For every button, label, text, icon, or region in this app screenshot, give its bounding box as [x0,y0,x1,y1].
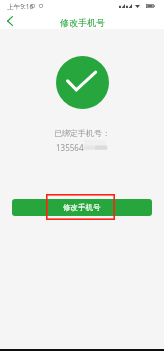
staticText: 修改手机号 [60,17,105,28]
staticText: 上午9:16 [7,2,34,11]
staticText: 修改手机号 [63,203,101,212]
staticText: 135564 [56,142,84,153]
staticText: 已绑定手机号： [54,128,110,138]
button[interactable]: 修改手机号 [12,199,152,216]
button[interactable]: Back [1,12,18,29]
